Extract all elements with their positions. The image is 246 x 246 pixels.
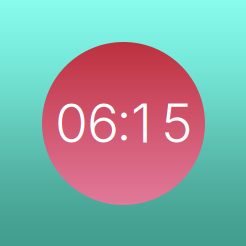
staticText: 0 [55,91,88,155]
button[interactable]: Timer 06:15 [41,41,205,205]
staticText: : [116,89,131,153]
staticText: 5 [161,91,193,155]
staticText: 1 [131,91,152,155]
staticText: 6 [87,91,119,155]
